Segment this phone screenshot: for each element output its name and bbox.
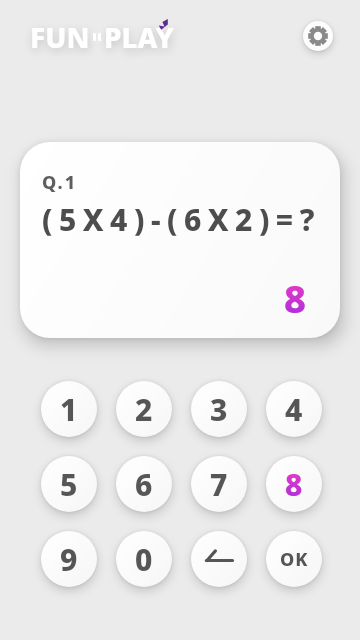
staticText: 3 [210, 389, 228, 430]
button[interactable]: 6 [116, 456, 172, 512]
button[interactable]: 5 [41, 456, 97, 512]
staticText: 0 [135, 539, 153, 580]
button[interactable] [303, 21, 333, 51]
button[interactable]: 0 [116, 531, 172, 587]
button[interactable]: 3 [191, 381, 247, 437]
button[interactable]: 4 [266, 381, 322, 437]
staticText: 6 [135, 464, 153, 505]
staticText: 5 [60, 464, 78, 505]
staticText: 8 [284, 272, 306, 324]
button[interactable] [191, 531, 247, 587]
staticText: 9 [60, 539, 78, 580]
staticText: Q.1 [42, 170, 78, 195]
staticText: FUN [30, 18, 90, 56]
staticText: 8 [285, 464, 303, 505]
button[interactable]: 2 [116, 381, 172, 437]
staticText: 4 [285, 389, 303, 430]
button[interactable]: 8 [266, 456, 322, 512]
staticText: OK [280, 547, 309, 572]
button[interactable]: 7 [191, 456, 247, 512]
staticText: 1 [60, 389, 78, 430]
button[interactable]: 9 [41, 531, 97, 587]
button[interactable]: OK [266, 531, 322, 587]
staticText: PLAY [104, 18, 174, 56]
staticText: 2 [135, 389, 153, 430]
staticText: (5X4)-(6X2)=? [42, 199, 321, 240]
button[interactable]: 1 [41, 381, 97, 437]
staticText: 7 [210, 464, 228, 505]
